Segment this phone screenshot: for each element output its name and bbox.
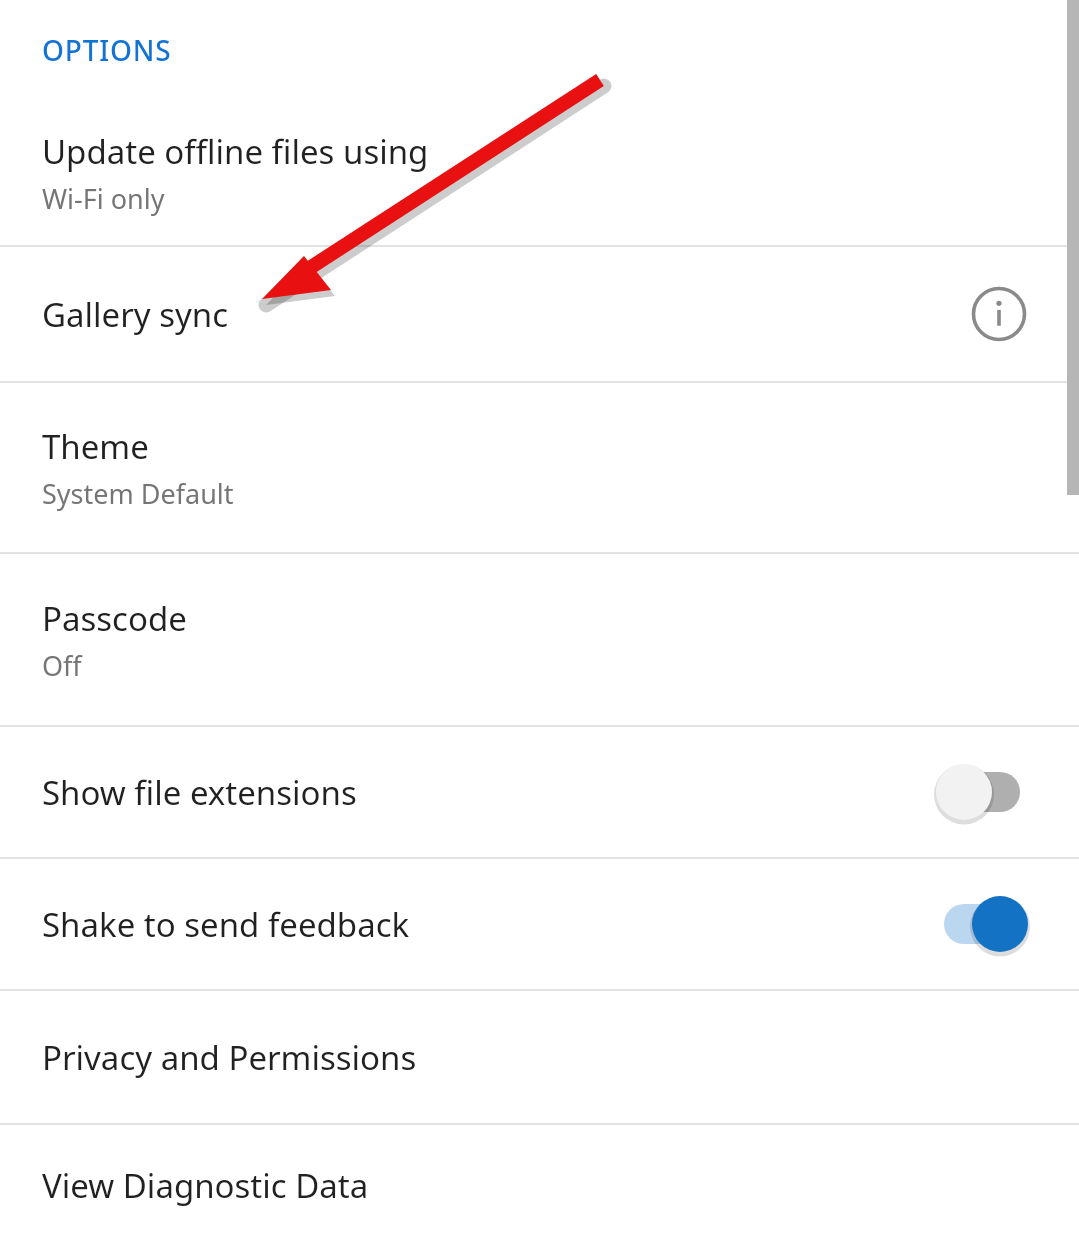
button[interactable]: Theme	[0, 383, 1079, 552]
staticText: OPTIONS	[42, 31, 172, 69]
button[interactable]: Privacy and Permissions	[0, 991, 1079, 1123]
button[interactable]: Update offline files using	[0, 100, 1079, 245]
button[interactable]: View Diagnostic Data	[0, 1125, 1079, 1245]
staticText: Theme	[42, 424, 149, 469]
staticText: Off	[42, 647, 82, 684]
staticText: Wi-Fi only	[42, 180, 165, 217]
staticText: View Diagnostic Data	[42, 1163, 369, 1208]
button[interactable]: Gallery sync	[0, 247, 1079, 381]
button[interactable]: More information about Gallery sync	[961, 276, 1037, 352]
button[interactable]: Passcode	[0, 554, 1079, 725]
staticText: Shake to send feedback	[42, 902, 410, 947]
staticText: Privacy and Permissions	[42, 1035, 417, 1080]
button[interactable]: Show file extensions toggle, off	[927, 754, 1037, 830]
button[interactable]: Shake to send feedback	[0, 859, 1079, 989]
staticText: Gallery sync	[42, 292, 229, 337]
staticText: Passcode	[42, 596, 187, 641]
staticText: System Default	[42, 475, 234, 512]
button[interactable]: Show file extensions	[0, 727, 1079, 857]
staticText: Update offline files using	[42, 129, 429, 174]
button[interactable]: Shake to send feedback toggle, on	[927, 886, 1037, 962]
staticText: Show file extensions	[42, 770, 357, 815]
